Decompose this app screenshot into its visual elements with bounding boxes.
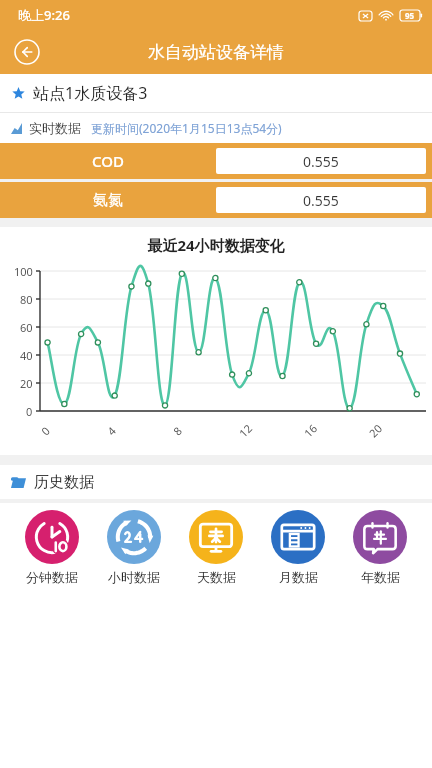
staticText: 4 bbox=[104, 423, 119, 438]
staticText: 水自动站设备详情 bbox=[148, 42, 284, 63]
staticText: 0 bbox=[38, 423, 53, 438]
staticText: 月数据 bbox=[279, 569, 318, 585]
staticText: 站点1水质设备3 bbox=[33, 82, 148, 104]
staticText: 20 bbox=[20, 376, 33, 390]
staticText: 0.555 bbox=[303, 152, 339, 171]
button[interactable]: 氨氮 bbox=[0, 182, 432, 218]
button[interactable]: 月数据 bbox=[268, 510, 328, 585]
button[interactable]: 站点1水质设备3 bbox=[0, 74, 432, 112]
staticText: 20 bbox=[366, 421, 385, 440]
staticText: 16 bbox=[301, 421, 320, 440]
button[interactable]: Back bbox=[10, 35, 44, 69]
staticText: 更新时间(2020年1月15日13点54分) bbox=[91, 120, 282, 136]
staticText: 95 bbox=[405, 10, 415, 21]
staticText: 氨氮 bbox=[93, 191, 123, 210]
staticText: 40 bbox=[20, 348, 33, 362]
button[interactable]: COD bbox=[0, 143, 432, 179]
staticText: 分钟数据 bbox=[26, 569, 78, 585]
staticText: 历史数据 bbox=[34, 473, 94, 492]
staticText: 12 bbox=[236, 421, 255, 440]
button[interactable]: 天数据 bbox=[186, 510, 246, 585]
staticText: 最近24小时数据变化 bbox=[0, 235, 432, 255]
button[interactable]: 分钟数据 bbox=[22, 510, 82, 585]
button[interactable]: 小时数据 bbox=[104, 510, 164, 585]
staticText: 0 bbox=[26, 404, 33, 418]
staticText: 60 bbox=[20, 320, 33, 334]
staticText: 0.555 bbox=[303, 191, 339, 210]
button[interactable]: 年数据 bbox=[350, 510, 410, 585]
staticText: COD bbox=[92, 151, 124, 171]
staticText: 晚上9:26 bbox=[18, 6, 70, 24]
staticText: 100 bbox=[14, 264, 33, 278]
staticText: 实时数据 bbox=[29, 120, 81, 136]
staticText: 小时数据 bbox=[108, 569, 160, 585]
staticText: 天数据 bbox=[197, 569, 236, 585]
staticText: 年数据 bbox=[361, 569, 400, 585]
staticText: 80 bbox=[20, 292, 33, 306]
staticText: 8 bbox=[170, 423, 185, 438]
